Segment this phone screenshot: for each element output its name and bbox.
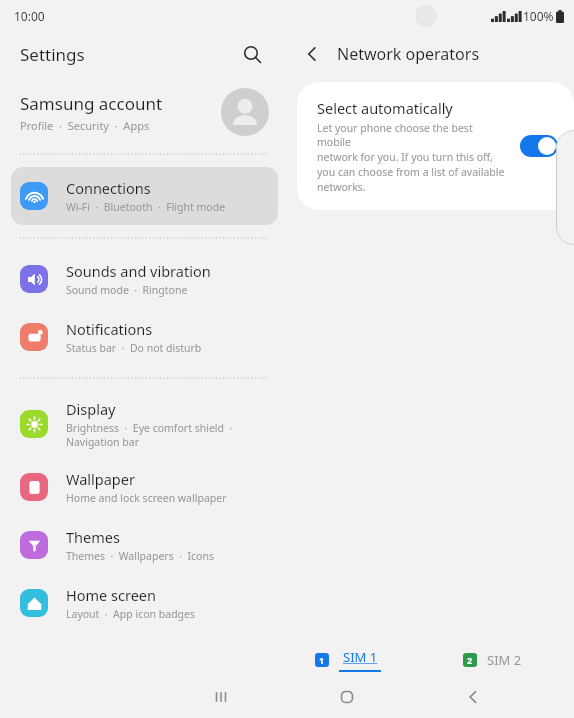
staticText: SIM 1 [343, 648, 378, 666]
button[interactable]: Select automatically [297, 82, 574, 210]
button[interactable]: Wallpaper [11, 458, 278, 516]
button[interactable]: Back [295, 37, 329, 71]
staticText: Themes [66, 527, 120, 547]
button[interactable]: Recents [158, 676, 284, 718]
button[interactable]: Sounds and vibration [11, 250, 278, 308]
staticText: Samsung account [20, 92, 163, 115]
staticText: Home and lock screen wallpaper [66, 491, 227, 505]
staticText: Select automatically [317, 98, 453, 118]
staticText: Notifications [66, 319, 153, 339]
staticText: Home screen [66, 585, 156, 605]
staticText: 2 [467, 654, 473, 666]
button[interactable]: Home [284, 676, 410, 718]
button[interactable]: Notifications [11, 308, 278, 366]
staticText: Profile · Security · Apps [20, 118, 150, 133]
button[interactable]: Select automatically toggle [520, 135, 558, 157]
staticText: 10:00 [14, 8, 45, 24]
staticText: Let your phone choose the best mobile ne… [317, 121, 508, 194]
button[interactable]: Samsung account [0, 76, 289, 148]
button[interactable]: Display [11, 390, 278, 458]
button[interactable]: Back [410, 676, 536, 718]
staticText: Wallpaper [66, 469, 135, 489]
staticText: 100% [523, 8, 554, 24]
staticText: Sounds and vibration [66, 261, 211, 281]
staticText: Settings [20, 43, 85, 66]
staticText: Layout · App icon badges [66, 607, 196, 621]
button[interactable]: Home screen [11, 574, 278, 632]
staticText: Display [66, 399, 116, 419]
button[interactable]: 1 [315, 644, 381, 676]
button[interactable]: Themes [11, 516, 278, 574]
button[interactable]: Connections [11, 167, 278, 225]
staticText: Brightness · Eye comfort shield · Naviga… [66, 421, 233, 449]
staticText: Connections [66, 178, 151, 198]
button[interactable]: 2 [463, 647, 522, 673]
staticText: Status bar · Do not disturb [66, 341, 202, 355]
staticText: 1 [319, 654, 325, 666]
staticText: Sound mode · Ringtone [66, 283, 188, 297]
button[interactable]: Search [235, 37, 269, 71]
staticText: Wi-Fi · Bluetooth · Flight mode [66, 200, 226, 214]
staticText: Network operators [337, 43, 480, 65]
staticText: SIM 2 [487, 651, 522, 669]
staticText: Themes · Wallpapers · Icons [66, 549, 214, 563]
